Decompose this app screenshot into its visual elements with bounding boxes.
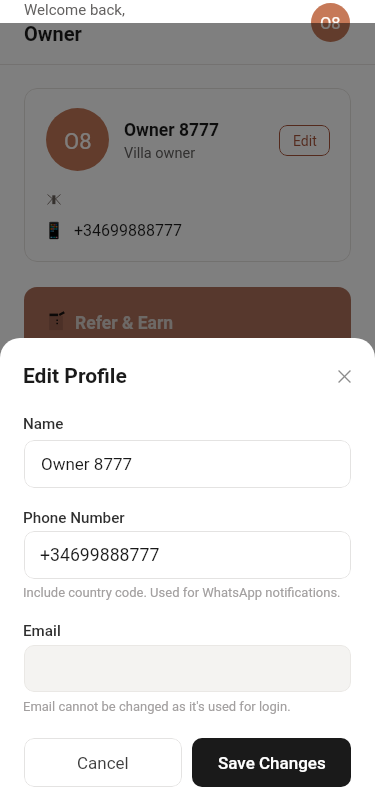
staticText: +34699888777 [74,221,182,240]
staticText: O8 [320,14,341,33]
staticText: Email cannot be changed as it's used for… [23,699,291,714]
button[interactable]: Owner 8777 [24,440,351,488]
staticText: Name [23,415,64,433]
button[interactable]: Edit [279,125,330,156]
button[interactable]: Refer & Earn [24,287,351,367]
button[interactable]: Cancel [24,738,182,787]
staticText: Owner 8777 [124,120,220,141]
button[interactable]: Close [333,365,356,388]
staticText: Email [23,622,61,640]
staticText: Owner [24,22,82,45]
staticText: Save Changes [218,753,326,773]
staticText: 📱 [44,221,64,240]
button[interactable]: Save Changes [192,738,351,787]
button[interactable]: +34699888777 [24,531,351,579]
staticText: +34699888777 [40,545,160,566]
staticText: Welcome back, [24,1,125,19]
staticText: Owner 8777 [41,454,133,474]
button[interactable]: O8 [311,3,350,42]
staticText: Refer & Earn [75,313,174,334]
staticText: Phone Number [23,509,125,527]
staticText: O8 [64,129,92,155]
staticText: Edit Profile [23,364,127,389]
staticText: Edit [293,133,317,149]
staticText: Cancel [77,753,129,773]
staticText: Include country code. Used for WhatsApp … [23,585,341,600]
staticText: Villa owner [124,145,196,162]
